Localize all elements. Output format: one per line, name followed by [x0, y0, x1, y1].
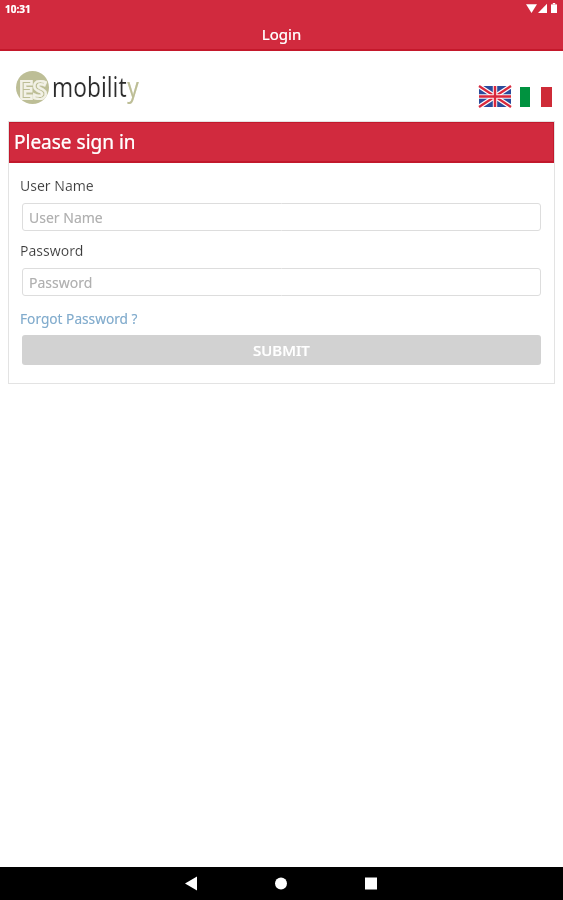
staticText: SUBMIT [253, 340, 310, 360]
button[interactable]: Recent apps [341, 867, 403, 900]
staticText: Login [0, 24, 563, 44]
button[interactable]: Switch to English [479, 86, 511, 107]
button[interactable]: Switch to Italian [520, 87, 552, 107]
staticText: User Name [20, 176, 94, 195]
staticText: User Name [29, 208, 103, 227]
button[interactable]: User Name [22, 203, 541, 231]
staticText: Please sign in [14, 129, 136, 155]
staticText: mobilit [52, 67, 127, 105]
staticText: Password [20, 241, 84, 260]
staticText: y [127, 67, 139, 105]
button[interactable]: Back [160, 867, 222, 900]
staticText: Password [29, 273, 93, 292]
staticText: ES [19, 72, 47, 104]
button[interactable]: SUBMIT [22, 335, 541, 365]
button[interactable]: Password [22, 268, 541, 296]
button[interactable]: Forgot Password ? [20, 309, 138, 328]
staticText: 10:31 [5, 2, 31, 16]
button[interactable]: Home [251, 867, 313, 900]
